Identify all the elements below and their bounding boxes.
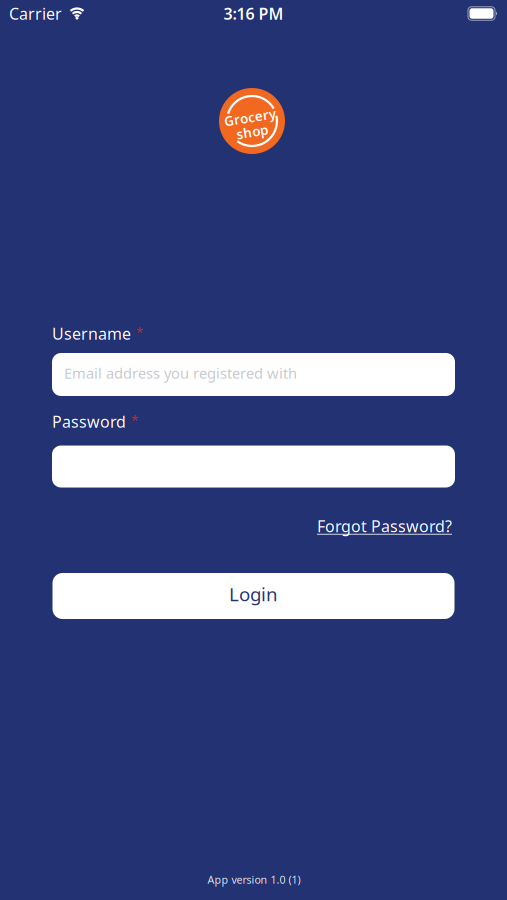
button[interactable]: Forgot Password? xyxy=(317,515,452,537)
staticText: * xyxy=(131,411,138,429)
staticText: App version 1.0 (1) xyxy=(207,872,300,887)
button[interactable]: Username — Email address you registered … xyxy=(52,353,455,396)
button[interactable]: Login xyxy=(52,573,454,619)
staticText: Carrier xyxy=(9,3,62,24)
button[interactable]: Password xyxy=(52,445,455,487)
staticText: Grocery xyxy=(225,108,277,126)
staticText: Username xyxy=(52,323,131,344)
staticText: 3:16 PM xyxy=(223,3,283,24)
staticText: Login xyxy=(229,582,278,606)
staticText: * xyxy=(136,323,143,341)
staticText: Forgot Password? xyxy=(317,515,452,537)
staticText: shop xyxy=(235,123,267,141)
staticText: Password xyxy=(52,411,126,432)
staticText: Email address you registered with xyxy=(64,363,297,383)
